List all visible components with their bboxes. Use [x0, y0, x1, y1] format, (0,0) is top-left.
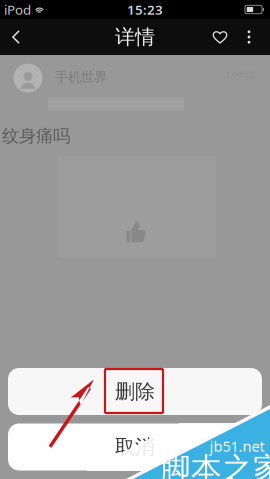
button[interactable]: More options: [236, 19, 262, 55]
button[interactable]: 删除: [8, 368, 262, 415]
button[interactable]: 取消: [8, 423, 262, 470]
staticText: 手机世界: [55, 69, 107, 85]
staticText: jb51.net: [209, 436, 264, 456]
staticText: 取消: [115, 435, 155, 459]
staticText: 详情: [115, 25, 155, 49]
staticText: 脚本之家: [160, 450, 270, 479]
button[interactable]: Favourite: [204, 19, 236, 55]
staticText: 删除: [115, 379, 155, 404]
staticText: 15:23: [127, 1, 163, 18]
staticText: 纹身痛吗: [2, 125, 70, 147]
button[interactable]: Back: [1, 19, 31, 55]
staticText: iPod: [4, 1, 31, 18]
